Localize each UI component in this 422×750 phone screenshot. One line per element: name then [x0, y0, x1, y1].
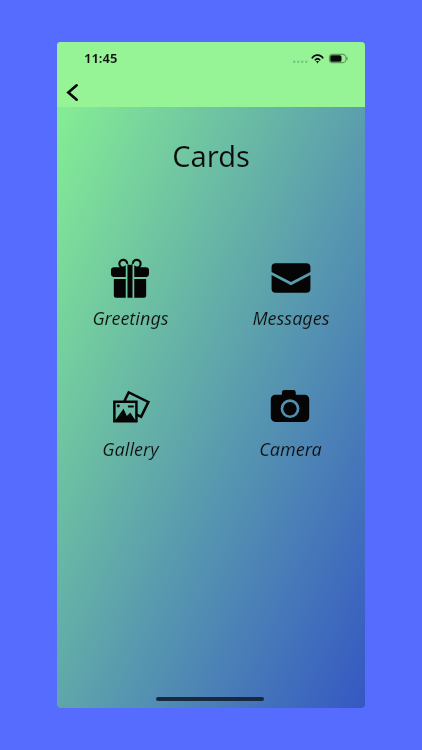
staticText: Cards: [172, 136, 250, 175]
staticText: Gallery: [102, 437, 159, 462]
staticText: 11:45: [84, 49, 118, 67]
button[interactable]: Messages: [234, 257, 348, 331]
button[interactable]: Camera: [233, 388, 347, 462]
button[interactable]: Gallery: [73, 388, 187, 462]
staticText: Camera: [259, 437, 322, 462]
staticText: Messages: [252, 306, 330, 331]
button[interactable]: Back: [57, 73, 91, 111]
button[interactable]: Greetings: [73, 257, 187, 331]
staticText: Greetings: [92, 306, 169, 331]
